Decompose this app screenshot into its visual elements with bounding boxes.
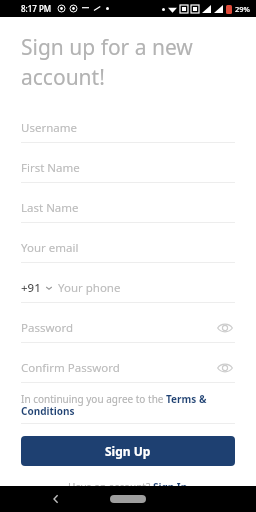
button[interactable]: In continuing you agree to the Terms & C… [21, 392, 235, 418]
button[interactable]: Home [110, 495, 146, 503]
staticText: Sign up for a new account! [21, 33, 193, 91]
button[interactable]: First Name [21, 153, 235, 183]
staticText: Last Name [21, 200, 79, 216]
button[interactable]: Last Name [21, 193, 235, 223]
staticText: 29% [235, 4, 250, 14]
button[interactable]: Toggle password visibility [215, 358, 235, 378]
staticText: Confirm Password [21, 360, 120, 376]
staticText: In continuing you agree to the Terms & C… [21, 392, 235, 418]
staticText: Your phone [58, 280, 121, 296]
button[interactable]: Password [21, 313, 235, 343]
staticText: 8:17 PM [21, 3, 52, 14]
button[interactable]: Username [21, 113, 235, 143]
button[interactable]: Confirm Password [21, 353, 235, 383]
staticText: Sign Up [105, 443, 151, 459]
staticText: First Name [21, 160, 80, 176]
button[interactable]: Have an account? Sign In [68, 480, 188, 486]
staticText: Username [21, 120, 77, 136]
staticText: Your email [21, 240, 79, 256]
staticText: Have an account? Sign In [68, 480, 188, 486]
button[interactable]: Back [44, 487, 68, 511]
button[interactable]: Toggle password visibility [215, 318, 235, 338]
button[interactable]: +91 [21, 273, 235, 303]
button[interactable]: Your email [21, 233, 235, 263]
staticText: +91 [21, 280, 41, 296]
staticText: Password [21, 320, 74, 336]
button[interactable]: Sign Up [21, 436, 235, 466]
